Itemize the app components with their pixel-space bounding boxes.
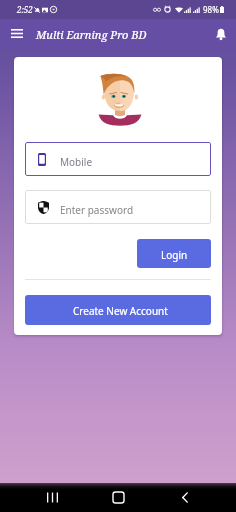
button[interactable]: Open navigation menu xyxy=(5,21,29,45)
button[interactable]: Home xyxy=(103,483,133,512)
staticText: Login xyxy=(161,248,188,262)
button[interactable]: Login xyxy=(137,239,211,268)
staticText: Enter password xyxy=(60,203,134,217)
staticText: Multi Earning Pro BD xyxy=(36,27,147,42)
button[interactable]: Back xyxy=(170,483,200,512)
button[interactable]: Create New Account xyxy=(25,295,211,325)
staticText: 98% xyxy=(203,4,219,15)
button[interactable]: Enter password xyxy=(25,190,211,224)
staticText: 2:52 xyxy=(17,4,33,15)
button[interactable]: Notifications xyxy=(209,22,233,46)
staticText: Create New Account xyxy=(73,304,168,318)
button[interactable]: Mobile xyxy=(25,142,211,176)
button[interactable]: Recent apps xyxy=(37,483,67,512)
staticText: Mobile xyxy=(60,155,93,169)
